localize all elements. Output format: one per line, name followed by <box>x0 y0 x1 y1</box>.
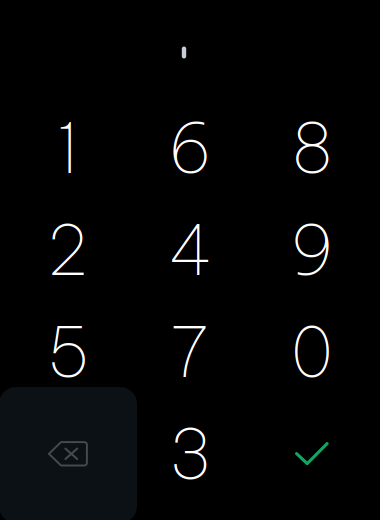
button[interactable]: Delete <box>7 403 129 505</box>
button[interactable]: Confirm <box>251 403 373 505</box>
staticText: 2 <box>48 207 88 293</box>
staticText: 3 <box>169 411 211 497</box>
staticText: 4 <box>169 207 210 293</box>
staticText: 5 <box>46 309 90 395</box>
button[interactable]: 3 <box>129 403 251 505</box>
button[interactable]: 4 <box>129 199 251 301</box>
button[interactable]: 8 <box>251 97 373 199</box>
staticText: 8 <box>291 105 333 191</box>
staticText: 0 <box>291 309 333 395</box>
button[interactable]: 9 <box>251 199 373 301</box>
button[interactable]: 6 <box>129 97 251 199</box>
staticText: 6 <box>168 105 212 191</box>
button[interactable]: 5 <box>7 301 129 403</box>
staticText: 1 <box>57 105 79 191</box>
button[interactable]: 2 <box>7 199 129 301</box>
button[interactable]: 1 <box>7 97 129 199</box>
button[interactable]: 7 <box>129 301 251 403</box>
staticText: 9 <box>290 207 334 293</box>
staticText: 7 <box>170 309 209 395</box>
button[interactable]: 0 <box>251 301 373 403</box>
